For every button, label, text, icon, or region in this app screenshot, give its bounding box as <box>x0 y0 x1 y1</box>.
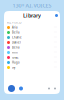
staticText: Grace <box>12 56 19 59</box>
button[interactable]: Grace <box>4 55 60 60</box>
button[interactable]: Charlie <box>4 35 60 40</box>
staticText: Aria <box>12 26 17 29</box>
button[interactable]: Now playing <box>8 85 15 92</box>
button[interactable]: Elena <box>4 45 60 50</box>
button[interactable]: Finn <box>4 50 60 55</box>
staticText: Elena <box>12 46 19 49</box>
button[interactable]: Bella <box>4 30 60 35</box>
button[interactable]: Hugo <box>4 60 60 65</box>
button[interactable]: Ivy <box>4 65 60 70</box>
staticText: Daniel <box>12 41 21 44</box>
button[interactable]: Repeat <box>54 87 56 89</box>
staticText: Charlie <box>12 36 22 39</box>
button[interactable]: Play <box>19 86 23 90</box>
button[interactable]: Add <box>53 12 60 19</box>
button[interactable]: Daniel <box>4 40 60 45</box>
staticText: 130+ A.I. VOICES <box>12 2 51 9</box>
staticText: Bella <box>12 31 19 34</box>
button[interactable]: Shuffle <box>48 87 50 89</box>
staticText: Hugo <box>12 61 20 64</box>
staticText: ALL VOICES <box>7 21 21 24</box>
button[interactable]: Aria <box>4 25 60 30</box>
staticText: Ivy <box>12 66 15 69</box>
staticText: Finn <box>12 51 18 54</box>
staticText: Library <box>23 12 41 19</box>
